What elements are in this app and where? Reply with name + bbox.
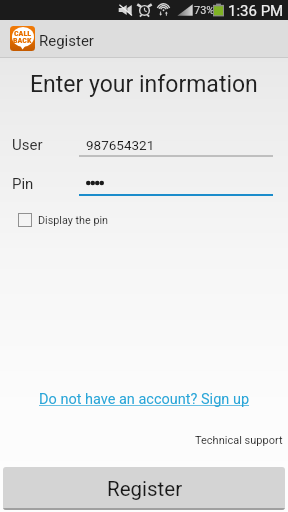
staticText: Enter your information xyxy=(30,71,258,98)
button[interactable]: Display the pin xyxy=(18,213,109,227)
staticText: 1:36 PM xyxy=(228,2,284,20)
button[interactable]: Technical support xyxy=(195,434,283,447)
staticText: User xyxy=(12,136,43,154)
staticText: Pin xyxy=(12,175,34,193)
button[interactable]: Do not have an account? Sign up xyxy=(39,391,250,408)
staticText: CALL xyxy=(14,29,32,38)
staticText: Display the pin xyxy=(38,214,109,227)
staticText: Register xyxy=(107,477,183,501)
staticText: 73% xyxy=(194,4,215,17)
staticText: Register xyxy=(39,32,94,50)
staticText: 987654321 xyxy=(86,137,155,153)
button[interactable]: Register xyxy=(3,467,285,510)
staticText: BACK xyxy=(13,36,32,45)
